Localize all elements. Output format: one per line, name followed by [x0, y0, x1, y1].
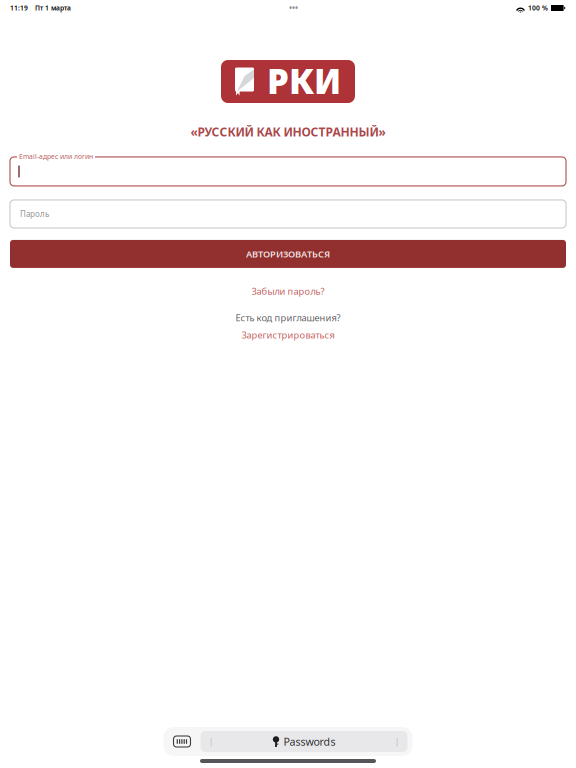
staticText: «РУССКИЙ КАК ИНОСТРАННЫЙ» [190, 124, 385, 140]
staticText: Есть код приглашения? [235, 311, 340, 324]
staticText: Пароль [20, 209, 49, 219]
staticText: | [394, 735, 399, 748]
button[interactable]: | [200, 731, 407, 752]
staticText: Забыли пароль? [251, 285, 324, 297]
staticText: Passwords [283, 734, 335, 749]
button[interactable]: Забыли пароль? [247, 282, 328, 300]
staticText: Зарегистрироваться [241, 329, 334, 341]
button[interactable]: Зарегистрироваться [237, 327, 338, 343]
staticText: ••• [289, 3, 298, 13]
staticText: Пт 1 марта [35, 4, 71, 12]
staticText: 11:19 [10, 4, 28, 12]
button[interactable]: АВТОРИЗОВАТЬСЯ [10, 240, 566, 268]
staticText: Email-адрес или логин [19, 152, 93, 161]
staticText: | [208, 735, 213, 748]
staticText: АВТОРИЗОВАТЬСЯ [246, 248, 330, 260]
staticText: 100 % [528, 4, 548, 12]
staticText: РКИ [267, 57, 341, 103]
button[interactable]: Show keyboard [169, 731, 194, 752]
